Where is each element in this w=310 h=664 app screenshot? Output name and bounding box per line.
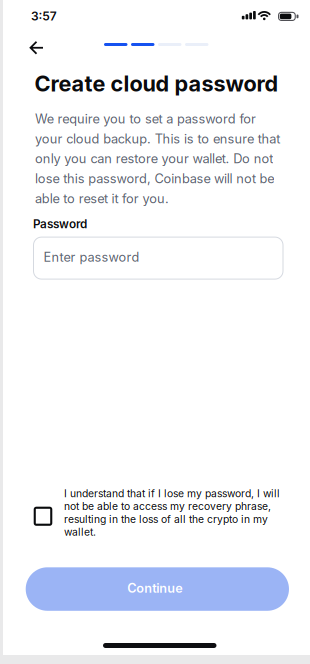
- button[interactable]: I understand that if I lose my password,…: [34, 487, 280, 538]
- button[interactable]: Back: [24, 35, 49, 60]
- staticText: Continue: [127, 580, 182, 596]
- staticText: Create cloud password: [35, 70, 279, 97]
- staticText: Enter password: [43, 249, 139, 265]
- staticText: We require you to set a password for you…: [35, 111, 280, 206]
- staticText: I understand that if I lose my password,…: [64, 487, 280, 538]
- button[interactable]: Continue: [26, 567, 289, 611]
- staticText: 3:57: [31, 9, 57, 23]
- staticText: Password: [33, 217, 87, 231]
